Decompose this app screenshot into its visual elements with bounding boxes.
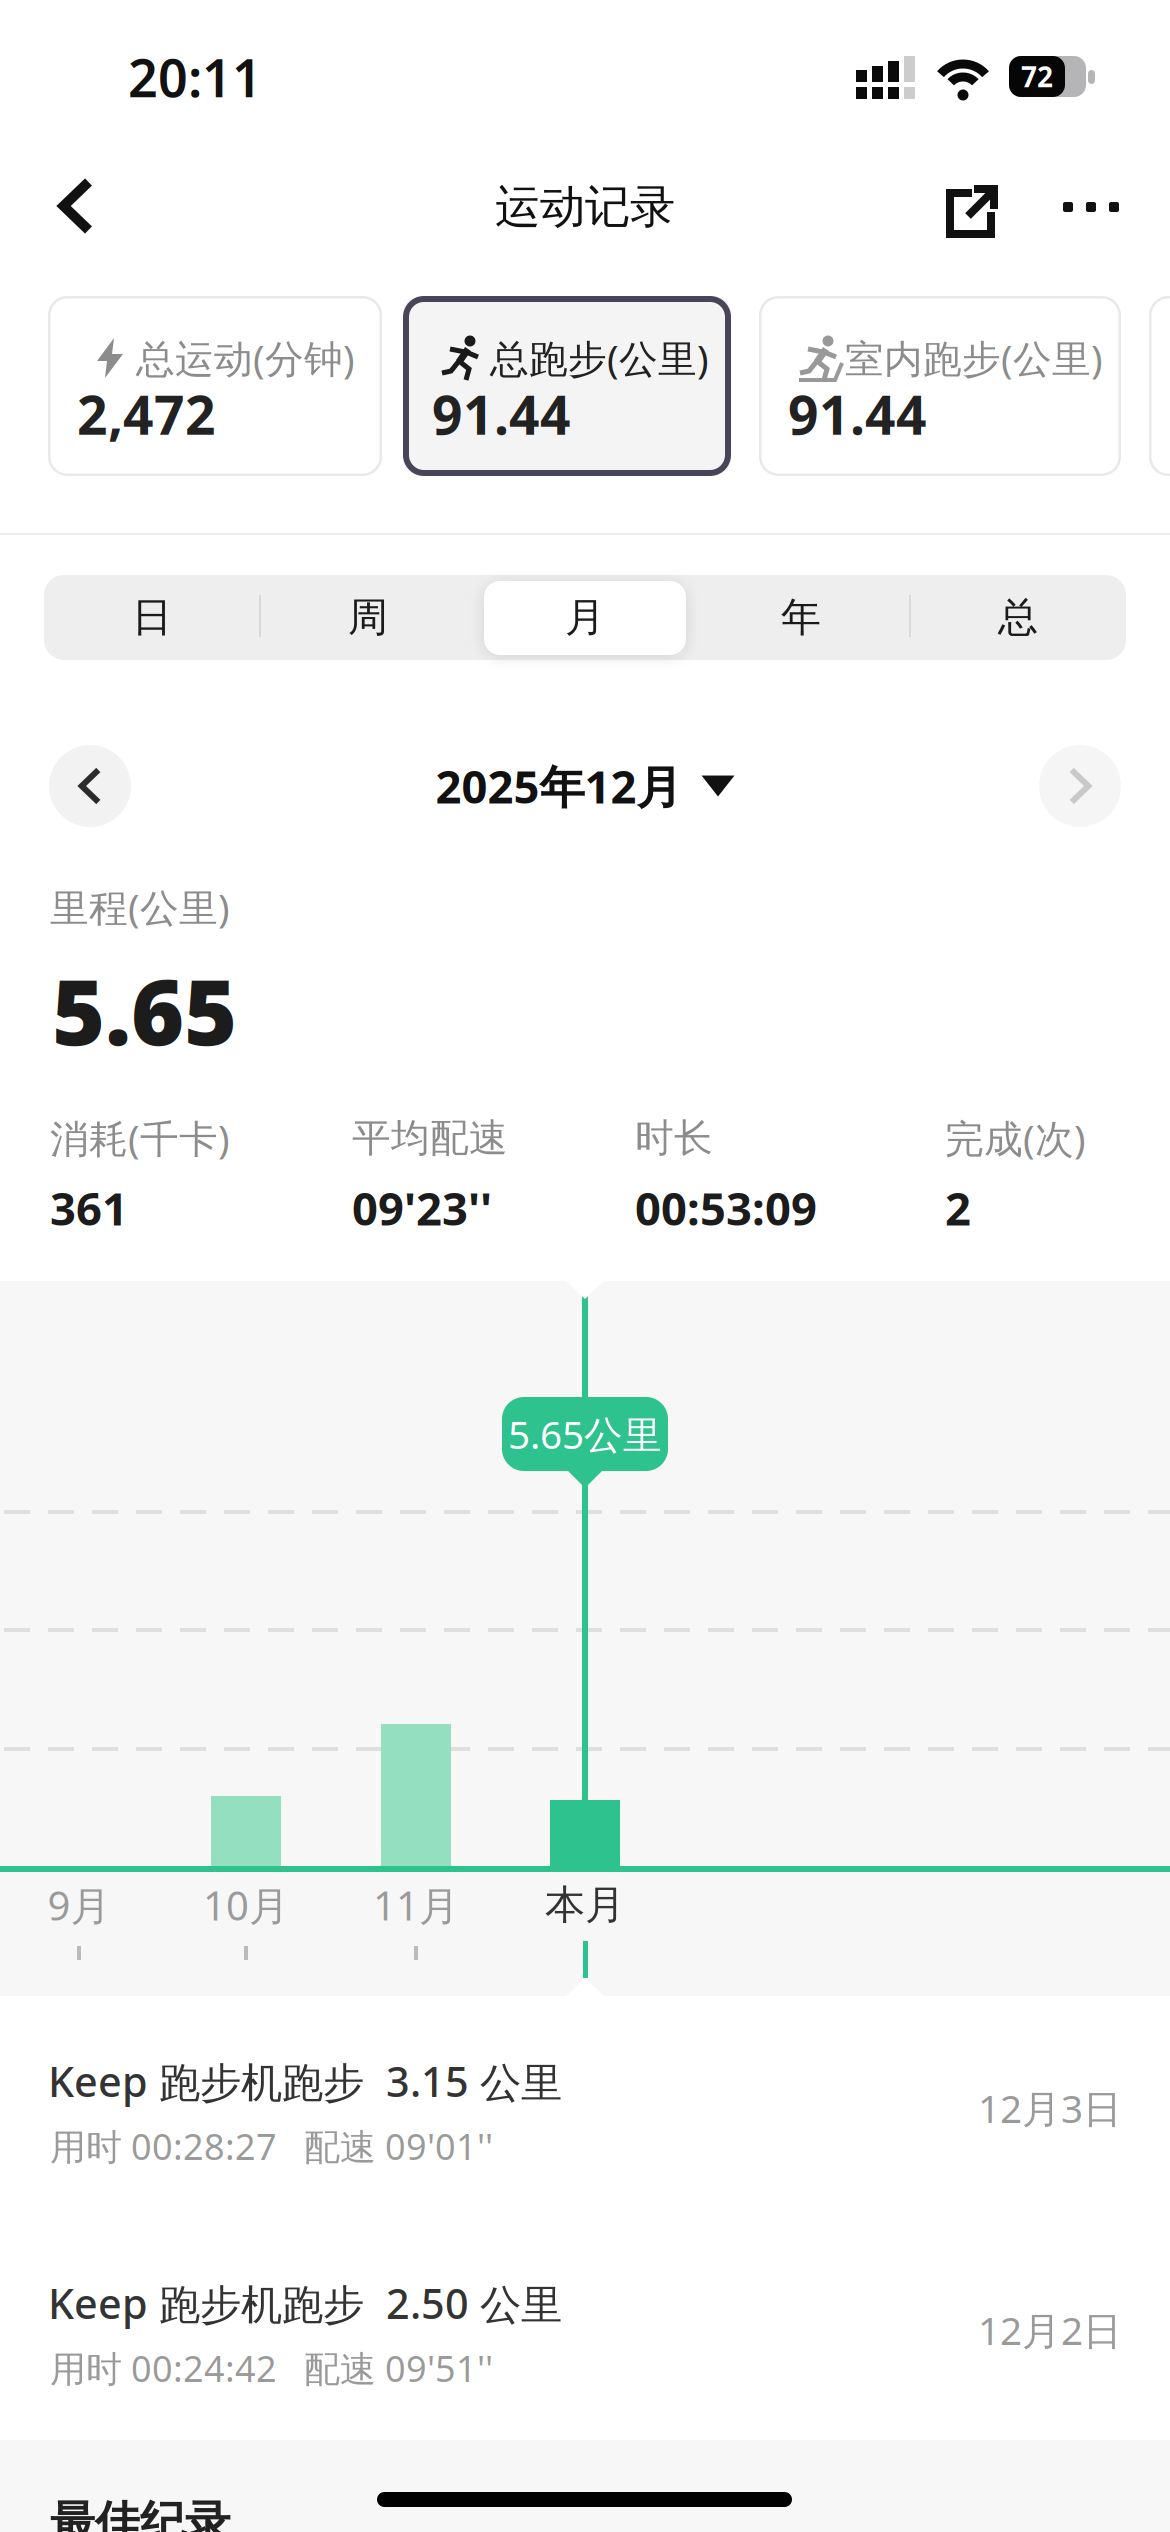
staticText: 总运动(分钟) (136, 332, 355, 384)
staticText: 最佳纪录 (50, 2495, 230, 2532)
staticText: 9月 (47, 1878, 110, 1931)
button[interactable]: 下一月 (1039, 745, 1121, 827)
staticText: 11月 (373, 1878, 459, 1931)
staticText: 月 (565, 593, 605, 642)
staticText: 10月 (203, 1878, 289, 1931)
button[interactable]: 总跑步(公里) 91.44 (403, 296, 731, 476)
button[interactable]: 总运动(分钟) 2,472 (48, 296, 382, 476)
staticText: 时长 (635, 1114, 713, 1162)
staticText: 用时 00:28:27 配速 09'01'' (50, 2122, 493, 2170)
staticText: 72 (1021, 58, 1053, 95)
staticText: Keep 跑步机跑步 2.50 公里 (48, 2275, 562, 2330)
staticText: 完成(次) (945, 1112, 1086, 1164)
staticText: 2025年12月 (435, 756, 681, 816)
staticText: 2 (945, 1178, 971, 1238)
button[interactable]: 分享 (940, 179, 1004, 243)
staticText: 5.65 (52, 950, 237, 1070)
staticText: 用时 00:24:42 配速 09'51'' (50, 2344, 493, 2392)
staticText: 日 (132, 593, 172, 642)
button[interactable]: 选择月份 (0, 745, 1170, 827)
staticText: 2,472 (77, 379, 216, 449)
staticText: 里程(公里) (50, 881, 230, 933)
staticText: 总 (998, 593, 1038, 642)
staticText: Keep 跑步机跑步 3.15 公里 (48, 2053, 562, 2108)
button[interactable]: Keep 跑步机跑步 3.15 公里 (0, 1996, 1170, 2218)
staticText: 09'23'' (352, 1178, 492, 1238)
staticText: 361 (50, 1178, 128, 1238)
staticText: 20:11 (128, 42, 262, 112)
staticText: 12月2日 (978, 2304, 1122, 2356)
staticText: 总跑步(公里) (490, 332, 709, 384)
button[interactable]: 上一月 (49, 745, 131, 827)
staticText: 12月3日 (978, 2082, 1122, 2134)
staticText: 周 (348, 593, 388, 642)
staticText: 91.44 (788, 379, 927, 449)
staticText: 00:53:09 (635, 1178, 817, 1238)
button[interactable]: 周 (260, 575, 476, 660)
button[interactable]: Keep 跑步机跑步 2.50 公里 (0, 2218, 1170, 2440)
staticText: 5.65公里 (508, 1408, 662, 1460)
button[interactable]: 总 (910, 575, 1126, 660)
staticText: 消耗(千卡) (50, 1112, 230, 1164)
staticText: 年 (781, 593, 821, 642)
staticText: 室内跑步(公里) (845, 332, 1103, 384)
button[interactable]: 日 (44, 575, 260, 660)
staticText: 运动记录 (495, 179, 675, 235)
button[interactable]: 年 (693, 575, 909, 660)
button[interactable]: 更多 (1053, 182, 1129, 232)
staticText: 91.44 (432, 379, 571, 449)
button[interactable]: 返回 (36, 166, 116, 246)
button[interactable]: 室内跑步(公里) 91.44 (759, 296, 1121, 476)
staticText: 本月 (545, 1880, 625, 1929)
button[interactable]: 户外跑步(公里) (1149, 296, 1170, 476)
button[interactable]: 月 (477, 575, 693, 660)
staticText: 平均配速 (352, 1114, 508, 1162)
